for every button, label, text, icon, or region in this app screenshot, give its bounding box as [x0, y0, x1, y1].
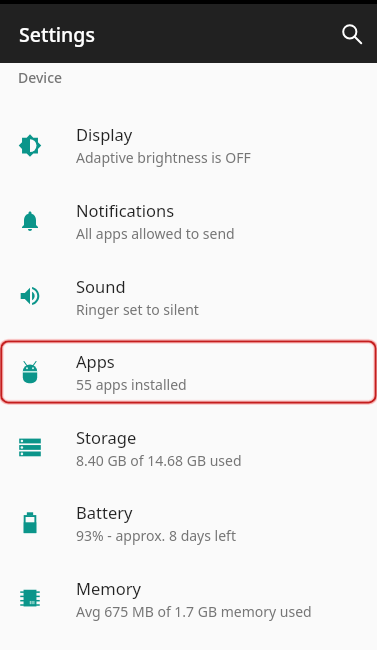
button[interactable]: Display: [0, 106, 377, 182]
staticText: 93% - approx. 8 days left: [76, 526, 236, 545]
button[interactable]: Memory: [0, 560, 377, 636]
button[interactable]: Notifications: [0, 182, 377, 258]
button[interactable]: Apps: [0, 333, 377, 409]
staticText: 8.40 GB of 14.68 GB used: [76, 451, 242, 470]
staticText: Settings: [19, 21, 95, 48]
staticText: Ringer set to silent: [76, 300, 199, 319]
staticText: Apps: [76, 350, 115, 372]
button[interactable]: Storage: [0, 409, 377, 485]
staticText: Sound: [76, 275, 126, 297]
button[interactable]: Sound: [0, 258, 377, 334]
button[interactable]: Battery: [0, 484, 377, 560]
staticText: Adaptive brightness is OFF: [76, 148, 251, 167]
staticText: Storage: [76, 426, 137, 448]
staticText: Notifications: [76, 199, 175, 221]
staticText: Display: [76, 123, 133, 145]
button[interactable]: Search: [328, 10, 376, 58]
staticText: Device: [18, 68, 63, 87]
staticText: Avg 675 MB of 1.7 GB memory used: [76, 602, 312, 621]
staticText: Memory: [76, 577, 141, 599]
staticText: 55 apps installed: [76, 375, 187, 394]
staticText: All apps allowed to send: [76, 224, 235, 243]
staticText: Battery: [76, 501, 133, 523]
